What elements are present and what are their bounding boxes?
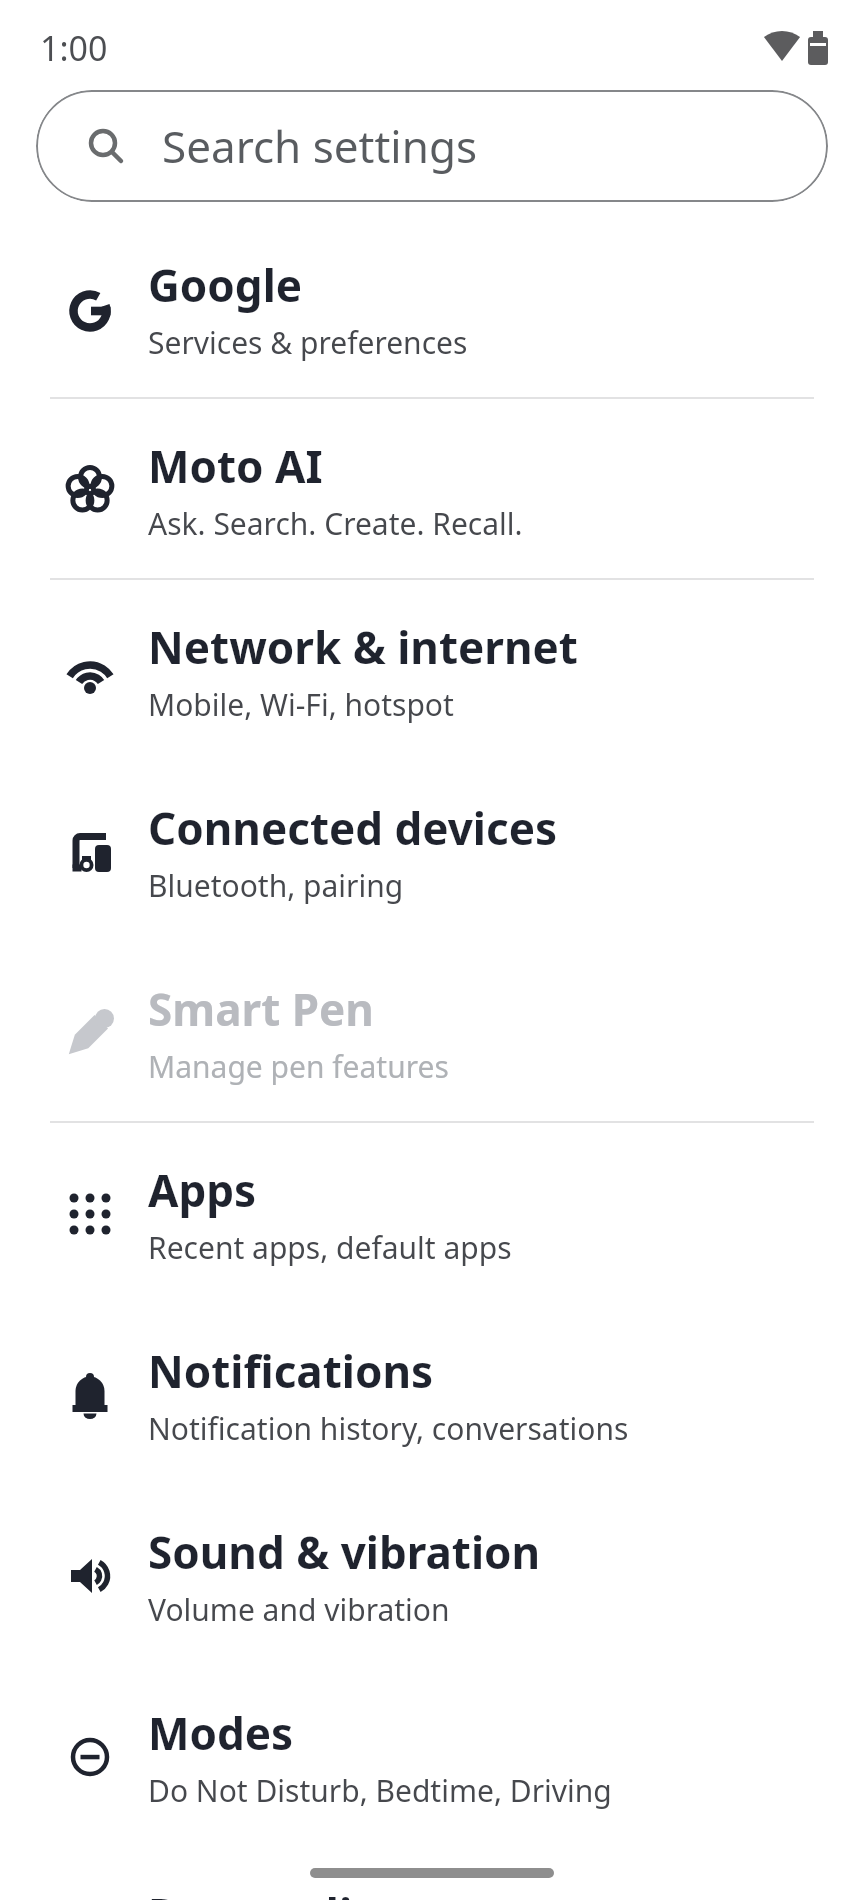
button[interactable]: Network & internet [0,580,864,761]
button[interactable]: Modes [0,1666,864,1847]
staticText: Moto AI [148,436,323,496]
staticText: Recent apps, default apps [148,1227,512,1268]
button[interactable]: Search settings [36,90,828,202]
staticText: Volume and vibration [148,1589,450,1630]
staticText: 1:00 [40,25,108,71]
staticText: Services & preferences [148,322,468,363]
button[interactable]: Sound & vibration [0,1485,864,1666]
staticText: Mobile, Wi-Fi, hotspot [148,684,454,725]
staticText: Bluetooth, pairing [148,865,404,906]
button[interactable]: Smart Pen [0,942,864,1123]
staticText: Manage pen features [148,1046,449,1087]
button[interactable]: Moto AI [0,399,864,580]
staticText: Network & internet [148,617,578,677]
staticText: Personalize [148,1884,401,1900]
staticText: Smart Pen [148,979,374,1039]
staticText: Notification history, conversations [148,1408,629,1449]
staticText: Do Not Disturb, Bedtime, Driving [148,1770,612,1811]
staticText: Notifications [148,1341,434,1401]
button[interactable]: Personalize [0,1847,864,1900]
button[interactable]: Connected devices [0,761,864,942]
staticText: Apps [148,1160,257,1220]
button[interactable]: Apps [0,1123,864,1304]
staticText: Search settings [162,116,478,176]
staticText: Connected devices [148,798,558,858]
staticText: Sound & vibration [148,1522,541,1582]
button[interactable]: Notifications [0,1304,864,1485]
staticText: Google [148,255,303,315]
staticText: Modes [148,1703,294,1763]
button[interactable]: Google [0,218,864,399]
staticText: Ask. Search. Create. Recall. [148,503,523,544]
